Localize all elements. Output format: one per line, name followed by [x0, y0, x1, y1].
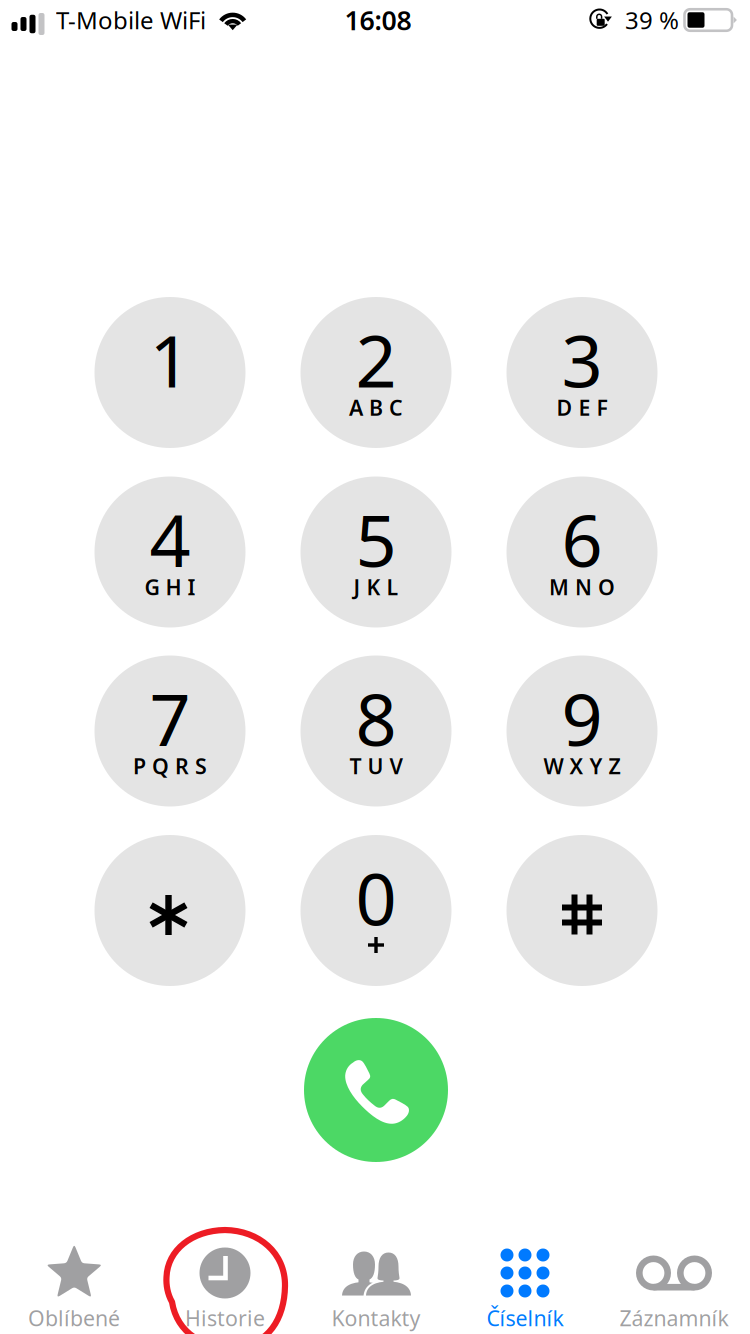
staticText: 39 %	[625, 4, 679, 36]
button[interactable]: 9	[506, 655, 657, 806]
staticText: 7	[149, 670, 190, 766]
staticText: 3	[561, 312, 602, 407]
staticText: Historie	[185, 1304, 265, 1332]
button[interactable]: Oblíbené	[0, 1232, 149, 1334]
staticText: 9	[561, 670, 602, 766]
button[interactable]: 2	[300, 297, 451, 448]
staticText: W X Y Z	[543, 752, 620, 780]
staticText: 0	[355, 850, 396, 945]
button[interactable]: Kontakty	[301, 1232, 451, 1334]
button[interactable]: 7	[94, 655, 245, 806]
button[interactable]: Číselník	[450, 1232, 600, 1334]
staticText: 6	[561, 491, 602, 587]
staticText: 1	[149, 312, 190, 407]
button[interactable]: 6	[506, 476, 657, 627]
button[interactable]: 8	[300, 655, 451, 806]
staticText: A B C	[349, 393, 403, 422]
button[interactable]: hvězdička	[94, 835, 245, 986]
staticText: P Q R S	[133, 752, 207, 780]
staticText: 5	[355, 491, 396, 587]
staticText: M N O	[549, 573, 615, 601]
staticText: 8	[355, 670, 396, 766]
button[interactable]: mřížka	[506, 835, 657, 986]
staticText: T U V	[349, 752, 402, 780]
button[interactable]: 3	[506, 297, 657, 448]
staticText: Kontakty	[331, 1304, 420, 1332]
staticText: 16:08	[344, 2, 411, 38]
button[interactable]: Volat	[304, 1018, 448, 1162]
staticText: J K L	[353, 573, 398, 601]
button[interactable]: 5	[300, 476, 451, 627]
staticText: Záznamník	[619, 1304, 728, 1332]
staticText: 4	[149, 491, 190, 587]
staticText: D E F	[556, 393, 607, 422]
button[interactable]: 1	[94, 297, 245, 448]
button[interactable]: 0	[300, 835, 451, 986]
staticText: G H I	[144, 573, 195, 601]
staticText: Číselník	[486, 1304, 563, 1332]
staticText: T-Mobile WiFi	[56, 4, 206, 36]
staticText: Oblíbené	[28, 1304, 120, 1332]
staticText: 2	[355, 312, 396, 407]
button[interactable]: Záznamník	[599, 1232, 749, 1334]
button[interactable]: Historie	[150, 1232, 300, 1334]
button[interactable]: 4	[94, 476, 245, 627]
